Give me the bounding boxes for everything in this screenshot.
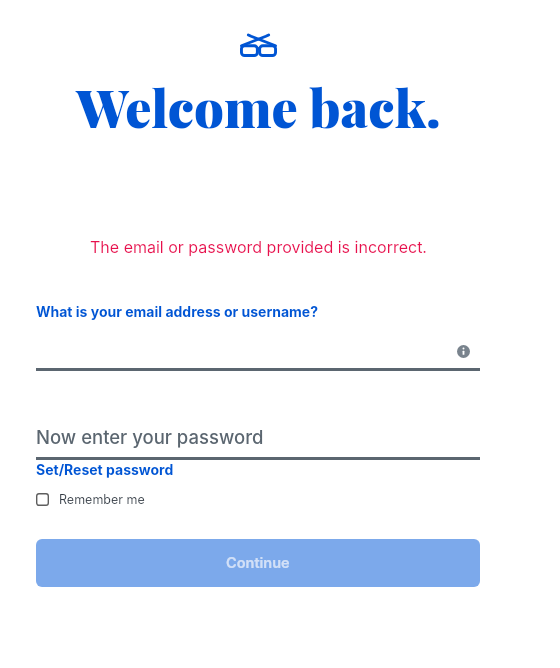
other: Info (457, 345, 470, 358)
button[interactable]: Remember me (36, 492, 145, 507)
staticText: Now enter your password (36, 426, 264, 448)
staticText: The email or password provided is incorr… (90, 237, 427, 256)
staticText: What is your email address or username? (36, 303, 318, 320)
staticText: Continue (226, 554, 290, 572)
button[interactable]: Set/Reset password (36, 461, 174, 478)
button[interactable]: Info (36, 336, 470, 366)
other: Logo (240, 33, 277, 57)
button[interactable]: Continue (36, 539, 480, 587)
staticText: Remember me (59, 492, 145, 507)
staticText: Welcome back. (76, 72, 441, 141)
